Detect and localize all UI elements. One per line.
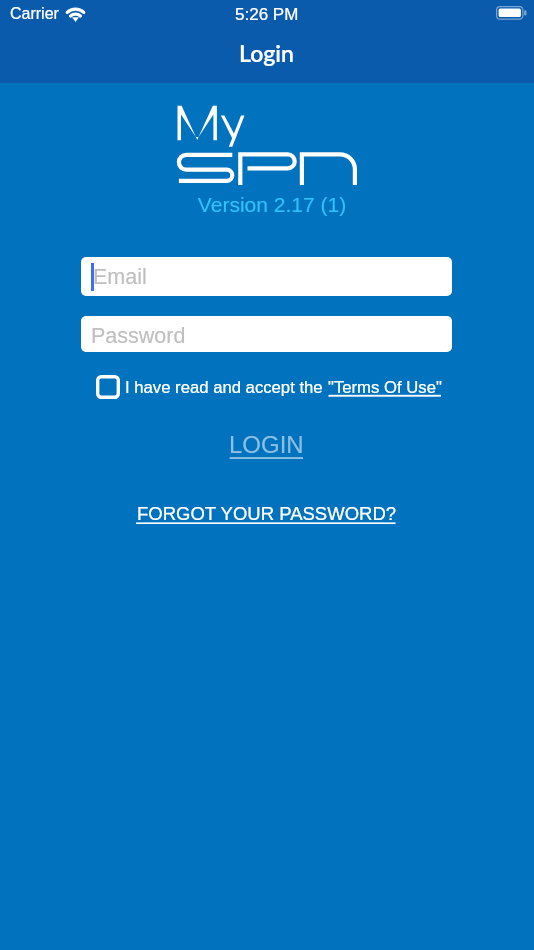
- button[interactable]: LOGIN: [229, 431, 304, 463]
- staticText: Version 2.17 (1): [5, 193, 534, 216]
- staticText: FORGOT YOUR PASSWORD?: [137, 503, 397, 524]
- staticText: Carrier: [10, 5, 59, 23]
- other: Wi-Fi signal: [65, 6, 86, 22]
- button[interactable]: FORGOT YOUR PASSWORD?: [136, 503, 397, 528]
- button[interactable]: Email: [81, 257, 452, 296]
- staticText: Password: [91, 324, 186, 348]
- button[interactable]: "Terms Of Use": [328, 378, 442, 397]
- staticText: Email: [93, 265, 147, 289]
- button[interactable]: Accept terms of use: [96, 375, 120, 399]
- staticText: 5:26 PM: [235, 5, 299, 24]
- staticText: I have read and accept the: [125, 378, 328, 397]
- staticText: Login: [239, 39, 294, 67]
- staticText: LOGIN: [229, 431, 304, 458]
- staticText: "Terms Of Use": [328, 378, 442, 397]
- button[interactable]: Password: [81, 316, 452, 352]
